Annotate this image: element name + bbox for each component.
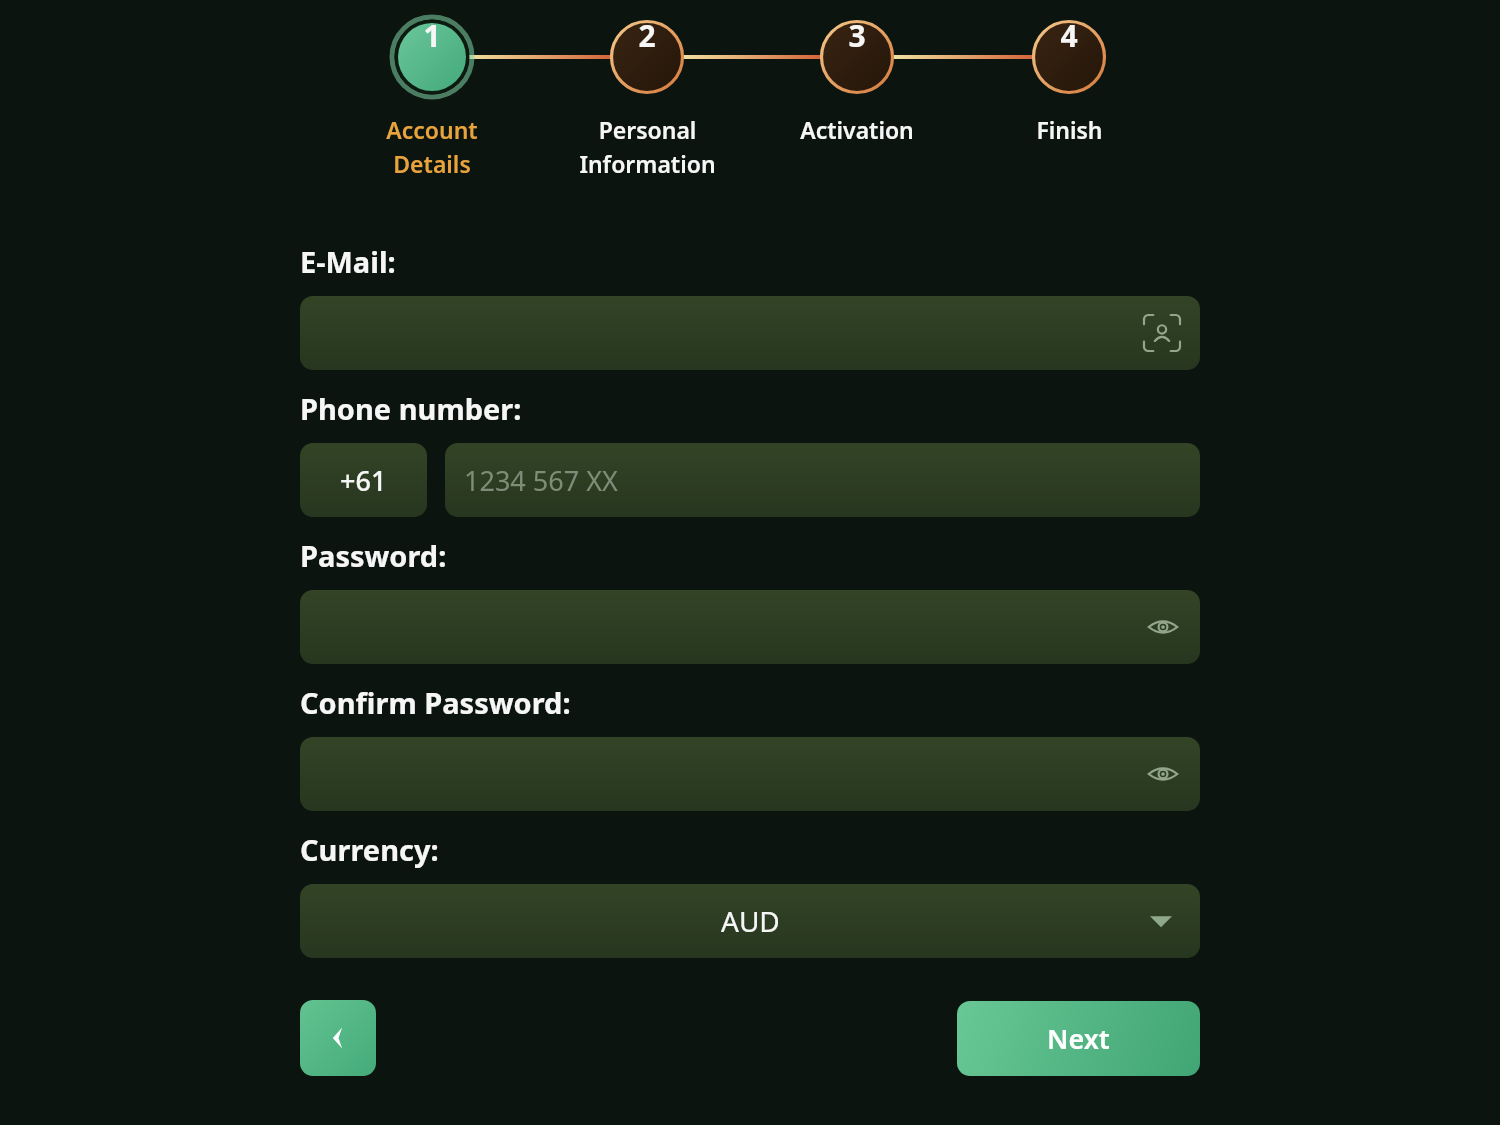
button[interactable]: 3 (777, 0, 937, 180)
button[interactable]: Scan face (300, 296, 1200, 370)
staticText: Finish (1036, 114, 1103, 145)
staticText: Currency: (300, 830, 439, 869)
button[interactable]: Next (957, 1001, 1200, 1076)
button[interactable]: Show password (1146, 610, 1180, 644)
staticText: Account Details (386, 114, 478, 179)
staticText: E-Mail: (300, 242, 396, 281)
button[interactable]: +61 (300, 443, 427, 517)
button[interactable]: Back (300, 1000, 376, 1076)
button[interactable]: 2 (567, 0, 727, 180)
button[interactable]: Scan face (1144, 315, 1180, 351)
staticText: 1 (423, 15, 441, 56)
staticText: Phone number: (300, 389, 522, 428)
staticText: 3 (848, 15, 866, 56)
staticText: AUD (721, 902, 780, 940)
staticText: Password: (300, 536, 447, 575)
button[interactable]: Show password (1146, 757, 1180, 791)
staticText: Next (1047, 1020, 1110, 1057)
button[interactable]: 1234 567 XX (445, 443, 1200, 517)
staticText: 2 (638, 15, 656, 56)
staticText: Activation (800, 114, 914, 145)
button[interactable]: Show password (300, 590, 1200, 664)
staticText: +61 (340, 462, 387, 499)
button[interactable]: 4 (989, 0, 1149, 180)
button[interactable]: AUD (300, 884, 1200, 958)
button[interactable]: 1 (352, 0, 512, 180)
staticText: Personal Information (579, 114, 716, 179)
staticText: 1234 567 XX (464, 462, 618, 499)
button[interactable]: Show password (300, 737, 1200, 811)
staticText: 4 (1060, 15, 1078, 56)
staticText: Confirm Password: (300, 683, 571, 722)
